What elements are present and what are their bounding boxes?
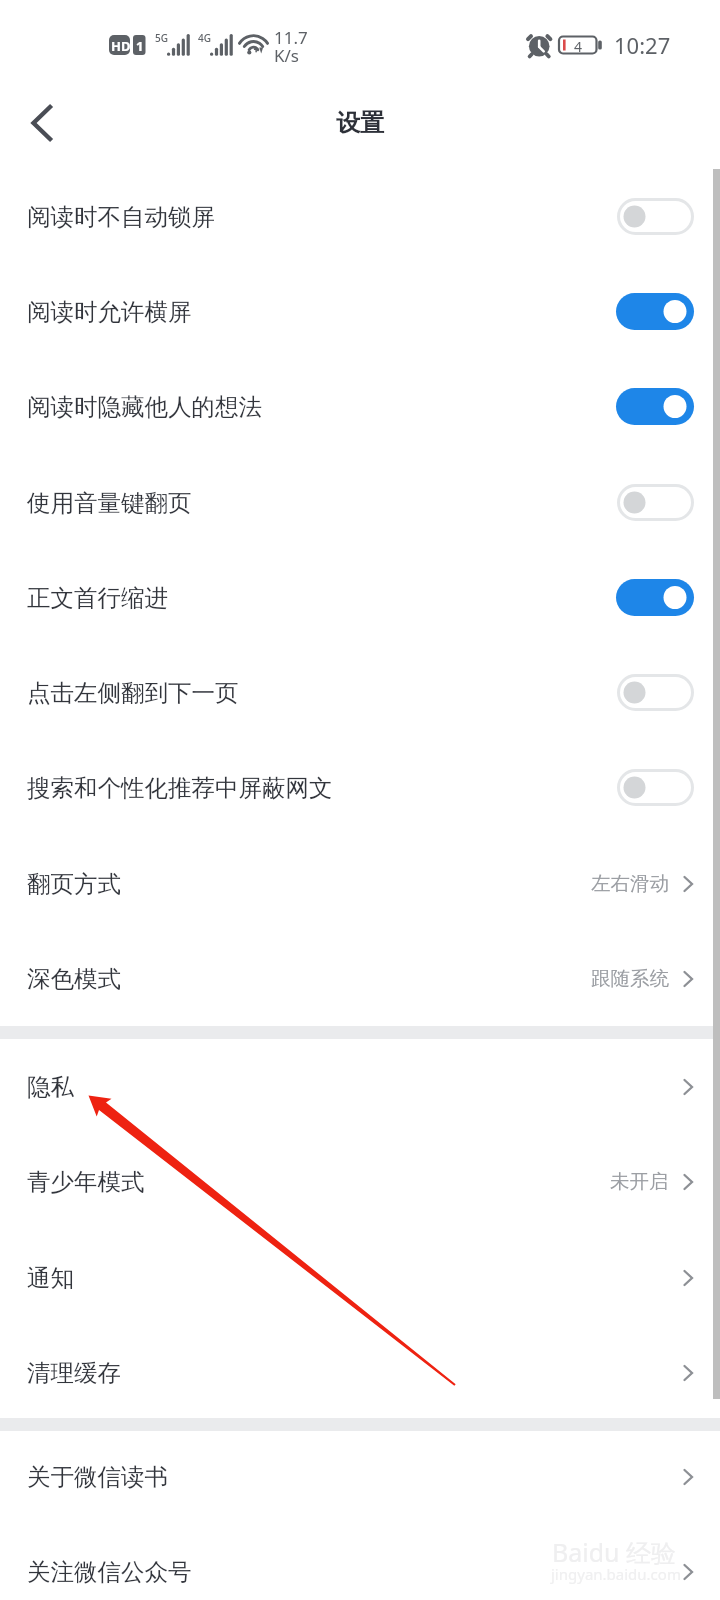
button[interactable]: Toggle [617,769,694,806]
button[interactable]: Toggle [617,198,694,235]
staticText: 翻页方式 [27,869,121,899]
staticText: 搜索和个性化推荐中屏蔽网文 [27,773,333,803]
button[interactable]: Toggle [616,388,694,425]
staticText: 1 [136,37,144,55]
button[interactable]: Back [12,96,70,154]
staticText: 5G [155,31,168,45]
staticText: 阅读时隐藏他人的想法 [27,392,262,422]
staticText: K/s [274,44,299,67]
staticText: 4G [198,31,211,45]
button[interactable]: 阅读时不自动锁屏 [0,169,720,264]
button[interactable]: 翻页方式 [0,836,720,931]
staticText: 阅读时不自动锁屏 [27,202,215,232]
staticText: 隐私 [27,1072,74,1102]
staticText: 阅读时允许横屏 [27,297,192,327]
staticText: 通知 [27,1263,74,1293]
staticText: 正文首行缩进 [27,583,168,613]
button[interactable]: 深色模式 [0,931,720,1026]
button[interactable]: Toggle [617,484,694,521]
staticText: 10:27 [614,30,671,60]
staticText: Baidu 经验 [552,1535,677,1569]
staticText: HD [111,37,131,55]
button[interactable]: 隐私 [0,1039,720,1134]
button[interactable]: 关注微信公众号 [0,1524,720,1600]
button[interactable]: 正文首行缩进 [0,550,720,645]
staticText: jingyan.baidu.com [551,1564,681,1584]
button[interactable]: Toggle [616,293,694,330]
button[interactable]: Toggle [616,579,694,616]
button[interactable]: 关于微信读书 [0,1429,720,1524]
button[interactable]: 搜索和个性化推荐中屏蔽网文 [0,740,720,835]
staticText: 跟随系统 [591,966,669,991]
staticText: 4 [574,37,583,56]
button[interactable]: Toggle [617,674,694,711]
staticText: 点击左侧翻到下一页 [27,678,239,708]
button[interactable]: 使用音量键翻页 [0,455,720,550]
button[interactable]: 阅读时允许横屏 [0,264,720,359]
staticText: 左右滑动 [591,871,669,896]
staticText: 未开启 [610,1169,669,1194]
staticText: 关注微信公众号 [27,1557,192,1587]
staticText: 设置 [336,108,384,138]
staticText: 使用音量键翻页 [27,488,192,518]
staticText: 青少年模式 [27,1167,145,1197]
button[interactable]: 青少年模式 [0,1134,720,1229]
staticText: 关于微信读书 [27,1462,168,1492]
button[interactable]: 点击左侧翻到下一页 [0,645,720,740]
button[interactable]: 通知 [0,1230,720,1325]
staticText: 清理缓存 [27,1358,121,1388]
button[interactable]: 清理缓存 [0,1325,720,1420]
staticText: 深色模式 [27,964,121,994]
staticText: 11.7 [274,26,308,49]
button[interactable]: 阅读时隐藏他人的想法 [0,359,720,454]
